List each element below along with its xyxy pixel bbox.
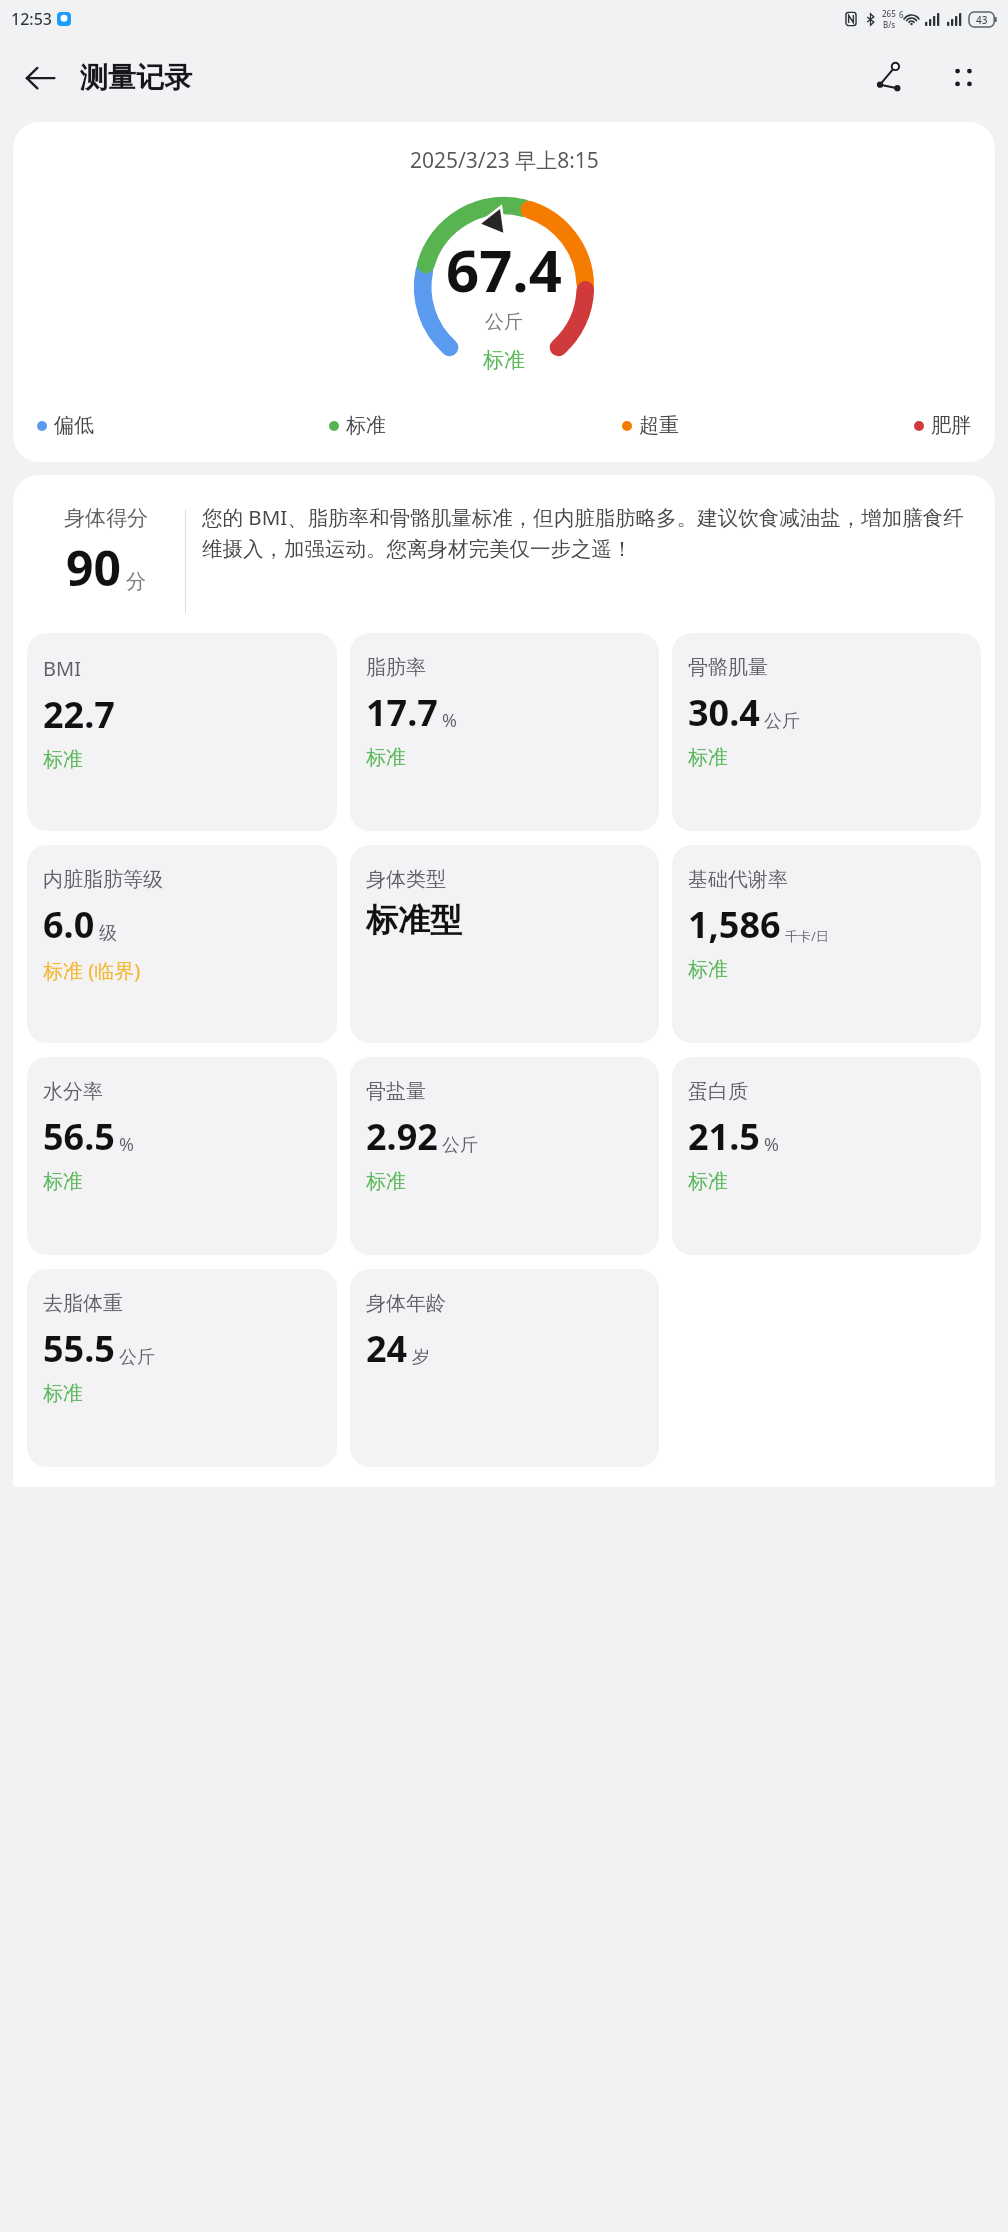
staticText: 公斤 xyxy=(485,310,523,334)
staticText: 级 xyxy=(99,922,117,945)
staticText: 6.0 xyxy=(43,900,95,949)
staticText: 肥胖 xyxy=(931,413,971,438)
button[interactable]: 身体得分 xyxy=(27,499,981,615)
staticText: 公斤 xyxy=(442,1134,478,1157)
staticText: 公斤 xyxy=(764,710,800,733)
staticText: 12:53 xyxy=(11,8,52,30)
button[interactable]: 水分率 xyxy=(27,1057,337,1255)
staticText: 千卡/日 xyxy=(785,927,829,945)
staticText: 标准 xyxy=(346,413,386,438)
staticText: 身体得分 xyxy=(64,505,148,531)
button[interactable]: 蛋白质 xyxy=(672,1057,981,1255)
button[interactable]: 标准 xyxy=(323,409,392,442)
staticText: 标准 (临界) xyxy=(43,957,141,984)
staticText: 6 xyxy=(899,9,904,20)
button[interactable]: More options xyxy=(934,48,992,106)
staticText: 17.7 xyxy=(366,688,438,737)
staticText: 水分率 xyxy=(43,1079,103,1104)
staticText: 测量记录 xyxy=(80,60,192,95)
staticText: 43 xyxy=(976,13,988,27)
staticText: 24 xyxy=(366,1324,408,1373)
staticText: 22.7 xyxy=(43,690,115,739)
staticText: 身体年龄 xyxy=(366,1291,446,1316)
staticText: 偏低 xyxy=(54,413,94,438)
staticText: 标准 xyxy=(688,1169,728,1194)
staticText: % xyxy=(119,1132,134,1157)
staticText: 基础代谢率 xyxy=(688,867,788,892)
button[interactable]: 骨骼肌量 xyxy=(672,633,981,831)
button[interactable]: 2025/3/23 早上8:15 xyxy=(13,122,995,462)
button[interactable]: 偏低 xyxy=(31,409,100,442)
staticText: % xyxy=(764,1132,779,1157)
staticText: B/s xyxy=(883,19,896,30)
staticText: 公斤 xyxy=(119,1346,155,1369)
staticText: 骨盐量 xyxy=(366,1079,426,1104)
staticText: 身体类型 xyxy=(366,867,446,892)
button[interactable]: 身体年龄 xyxy=(350,1269,659,1467)
staticText: 岁 xyxy=(412,1346,430,1369)
staticText: 标准 xyxy=(366,745,406,770)
staticText: 标准 xyxy=(366,1169,406,1194)
staticText: % xyxy=(442,708,457,733)
button[interactable]: Back xyxy=(13,50,67,104)
staticText: 标准 xyxy=(43,1169,83,1194)
staticText: 脂肪率 xyxy=(366,655,426,680)
staticText: 2.92 xyxy=(366,1112,438,1161)
staticText: 内脏脂肪等级 xyxy=(43,867,163,892)
staticText: 标准 xyxy=(483,347,525,373)
staticText: 骨骼肌量 xyxy=(688,655,768,680)
button[interactable]: BMI xyxy=(27,633,337,831)
button[interactable]: 基础代谢率 xyxy=(672,845,981,1043)
button[interactable]: 内脏脂肪等级 xyxy=(27,845,337,1043)
button[interactable]: 去脂体重 xyxy=(27,1269,337,1467)
staticText: 90 xyxy=(66,535,121,600)
staticText: 56.5 xyxy=(43,1112,115,1161)
staticText: 标准 xyxy=(43,747,83,772)
button[interactable]: 身体类型 xyxy=(350,845,659,1043)
staticText: 标准 xyxy=(43,1381,83,1406)
staticText: 分 xyxy=(126,569,146,594)
staticText: 超重 xyxy=(639,413,679,438)
staticText: 55.5 xyxy=(43,1324,115,1373)
staticText: 去脂体重 xyxy=(43,1291,123,1316)
staticText: 1,586 xyxy=(688,900,781,949)
button[interactable]: 肥胖 xyxy=(908,409,977,442)
staticText: 2025/3/23 早上8:15 xyxy=(410,146,599,175)
staticText: 标准型 xyxy=(366,900,462,940)
staticText: 67.4 xyxy=(446,230,562,309)
staticText: BMI xyxy=(43,655,81,682)
staticText: 蛋白质 xyxy=(688,1079,748,1104)
button[interactable]: 骨盐量 xyxy=(350,1057,659,1255)
staticText: 标准 xyxy=(688,745,728,770)
button[interactable]: 超重 xyxy=(616,409,685,442)
button[interactable]: 脂肪率 xyxy=(350,633,659,831)
staticText: 您的 BMI、脂肪率和骨骼肌量标准，但内脏脂肪略多。建议饮食减油盐，增加膳食纤维… xyxy=(202,503,981,562)
staticText: 30.4 xyxy=(688,688,760,737)
staticText: 21.5 xyxy=(688,1112,760,1161)
button[interactable]: Share xyxy=(860,48,918,106)
staticText: 265 xyxy=(882,8,896,19)
staticText: 标准 xyxy=(688,957,728,982)
